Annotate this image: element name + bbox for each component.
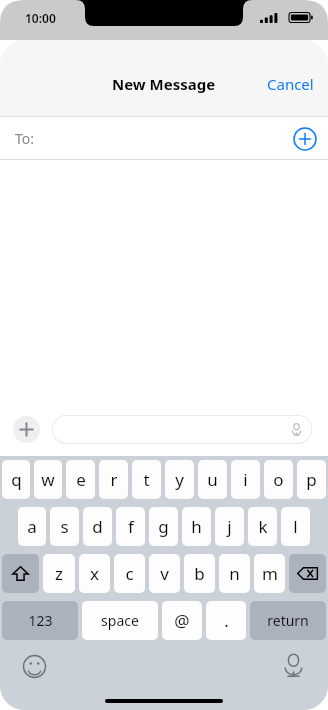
button[interactable]: 123: [2, 601, 78, 640]
button[interactable]: t: [132, 460, 161, 499]
button[interactable]: j: [215, 507, 244, 546]
button[interactable]: Shift: [2, 554, 39, 593]
button[interactable]: g: [149, 507, 178, 546]
staticText: n: [229, 562, 240, 585]
staticText: @: [174, 609, 190, 632]
button[interactable]: u: [198, 460, 227, 499]
staticText: g: [158, 515, 169, 538]
button[interactable]: d: [83, 507, 112, 546]
staticText: w: [41, 468, 55, 491]
button[interactable]: q: [2, 460, 30, 499]
button[interactable]: e: [66, 460, 95, 499]
button[interactable]: w: [34, 460, 62, 499]
staticText: .: [224, 609, 229, 632]
staticText: e: [76, 468, 86, 491]
staticText: u: [207, 468, 218, 491]
staticText: v: [160, 562, 169, 585]
staticText: b: [194, 562, 205, 585]
staticText: j: [227, 515, 232, 538]
button[interactable]: @: [162, 601, 202, 640]
staticText: s: [60, 515, 69, 538]
button[interactable]: r: [99, 460, 128, 499]
button[interactable]: v: [149, 554, 180, 593]
button[interactable]: n: [219, 554, 250, 593]
button[interactable]: l: [281, 507, 310, 546]
button[interactable]: Cancel: [253, 64, 328, 104]
button[interactable]: o: [264, 460, 293, 499]
staticText: z: [55, 562, 63, 585]
button[interactable]: Backspace: [289, 554, 326, 593]
staticText: o: [273, 468, 284, 491]
button[interactable]: h: [182, 507, 211, 546]
button[interactable]: s: [50, 507, 79, 546]
button[interactable]: p: [297, 460, 326, 499]
button[interactable]: [52, 415, 312, 444]
staticText: a: [27, 515, 37, 538]
button[interactable]: y: [165, 460, 194, 499]
staticText: New Message: [112, 74, 216, 94]
button[interactable]: i: [231, 460, 260, 499]
button[interactable]: z: [43, 554, 75, 593]
staticText: return: [267, 611, 309, 630]
staticText: q: [11, 468, 22, 491]
button[interactable]: Emoji: [20, 652, 49, 681]
staticText: f: [128, 515, 134, 538]
button[interactable]: Add attachment: [13, 416, 40, 443]
button[interactable]: Dictate: [281, 653, 306, 678]
button[interactable]: c: [114, 554, 145, 593]
staticText: space: [101, 611, 139, 630]
staticText: y: [175, 468, 184, 491]
staticText: d: [92, 515, 103, 538]
staticText: 123: [28, 611, 53, 630]
button[interactable]: m: [254, 554, 285, 593]
button[interactable]: f: [116, 507, 145, 546]
staticText: i: [243, 468, 248, 491]
staticText: c: [125, 562, 134, 585]
staticText: h: [191, 515, 202, 538]
button[interactable]: k: [248, 507, 277, 546]
staticText: Cancel: [267, 74, 314, 94]
staticText: x: [90, 562, 99, 585]
button[interactable]: b: [184, 554, 215, 593]
staticText: To:: [15, 129, 35, 148]
staticText: m: [262, 562, 278, 585]
staticText: r: [110, 468, 118, 491]
button[interactable]: return: [250, 601, 326, 640]
button[interactable]: x: [79, 554, 110, 593]
staticText: t: [143, 468, 150, 491]
button[interactable]: space: [82, 601, 158, 640]
button[interactable]: .: [206, 601, 246, 640]
button[interactable]: Add contact: [288, 122, 322, 156]
staticText: k: [258, 515, 268, 538]
staticText: l: [293, 515, 298, 538]
staticText: p: [306, 468, 317, 491]
staticText: 10:00: [25, 10, 56, 26]
button[interactable]: a: [18, 507, 46, 546]
